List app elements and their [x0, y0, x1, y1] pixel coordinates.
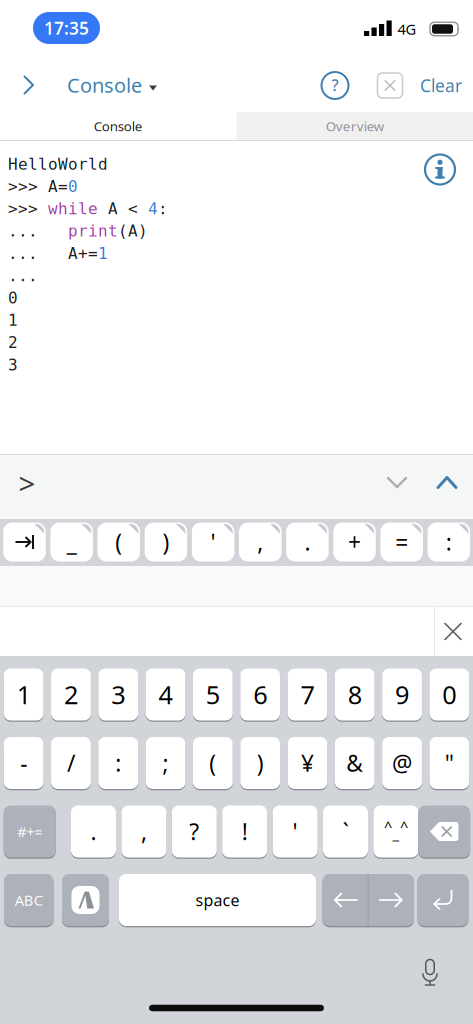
- button[interactable]: Dismiss: [377, 73, 402, 98]
- staticText: >: [18, 463, 35, 502]
- button[interactable]: 2: [51, 667, 91, 721]
- button[interactable]: 8: [335, 667, 375, 721]
- staticText: `: [342, 816, 348, 846]
- button[interactable]: :: [98, 736, 138, 790]
- button[interactable]: ): [240, 736, 280, 790]
- button[interactable]: .: [286, 522, 329, 561]
- staticText: _: [67, 527, 77, 557]
- staticText: :: [446, 527, 452, 557]
- button[interactable]: 1: [4, 667, 44, 721]
- button[interactable]: `: [323, 804, 368, 858]
- button[interactable]: ,: [121, 804, 166, 858]
- staticText: 0: [442, 678, 456, 711]
- button[interactable]: [417, 873, 468, 927]
- button[interactable]: Console: [0, 112, 236, 140]
- button[interactable]: 7: [287, 667, 327, 721]
- button[interactable]: Info: [425, 154, 455, 184]
- staticText: ": [445, 748, 454, 778]
- button[interactable]: ?: [172, 804, 217, 858]
- button[interactable]: [62, 873, 109, 927]
- staticText: ... A+=: [8, 244, 98, 262]
- button[interactable]: ABC: [4, 873, 53, 927]
- staticText: while: [48, 200, 98, 218]
- button[interactable]: 5: [193, 667, 233, 721]
- staticText: 0: [68, 177, 78, 196]
- button[interactable]: [322, 873, 414, 927]
- button[interactable]: Close suggestions: [445, 623, 461, 639]
- button[interactable]: !: [222, 804, 267, 858]
- staticText: ...: [8, 267, 38, 285]
- staticText: Console: [94, 117, 143, 135]
- staticText: 3: [111, 678, 125, 711]
- staticText: print: [68, 222, 118, 240]
- staticText: 4: [158, 678, 172, 711]
- button[interactable]: -: [4, 736, 44, 790]
- button[interactable]: History up: [438, 477, 456, 488]
- button[interactable]: 9: [382, 667, 422, 721]
- staticText: Overview: [326, 117, 384, 135]
- button[interactable]: ': [273, 804, 318, 858]
- button[interactable]: =: [380, 522, 423, 561]
- button[interactable]: History down: [388, 478, 406, 488]
- button[interactable]: (: [97, 522, 140, 561]
- staticText: (A): [118, 222, 148, 240]
- button[interactable]: ,: [239, 522, 281, 561]
- button[interactable]: Clear: [420, 74, 462, 97]
- button[interactable]: ': [192, 522, 234, 561]
- staticText: ^ ^: [384, 816, 408, 836]
- button[interactable]: +: [333, 522, 376, 561]
- button[interactable]: Overview: [236, 112, 473, 140]
- button[interactable]: 0: [429, 667, 469, 721]
- staticText: .: [90, 816, 96, 846]
- button[interactable]: Help: [321, 72, 348, 99]
- button[interactable]: ¥: [287, 736, 327, 790]
- staticText: !: [242, 816, 248, 846]
- button[interactable]: Return to Personal Hotspot: [33, 12, 100, 44]
- button[interactable]: .: [71, 804, 116, 858]
- staticText: :: [115, 748, 121, 778]
- staticText: 7: [300, 678, 314, 711]
- staticText: >>> A=: [8, 177, 68, 196]
- staticText: ?: [331, 74, 338, 96]
- button[interactable]: 6: [240, 667, 280, 721]
- staticText: :: [158, 200, 168, 218]
- button[interactable]: ): [145, 522, 187, 561]
- staticText: @: [392, 748, 412, 778]
- button[interactable]: /: [51, 736, 91, 790]
- button[interactable]: :: [428, 522, 470, 561]
- staticText: /: [67, 748, 75, 778]
- staticText: Clear: [420, 74, 462, 97]
- staticText: &: [346, 748, 363, 778]
- staticText: ABC: [15, 890, 43, 910]
- staticText: 1: [8, 311, 18, 329]
- button[interactable]: [418, 804, 470, 858]
- button[interactable]: Show sidebar: [21, 74, 36, 95]
- button[interactable]: (: [193, 736, 233, 790]
- staticText: -: [20, 748, 27, 778]
- button[interactable]: #+=: [4, 804, 56, 858]
- staticText: 6: [253, 678, 267, 711]
- staticText: space: [195, 889, 239, 911]
- button[interactable]: &: [335, 736, 375, 790]
- staticText: 2: [64, 678, 78, 711]
- staticText: ,: [141, 816, 147, 846]
- staticText: ¥: [301, 748, 314, 778]
- staticText: A <: [98, 200, 148, 218]
- button[interactable]: Tab: [3, 522, 46, 561]
- staticText: +: [348, 527, 361, 557]
- button[interactable]: Dictation: [419, 958, 441, 988]
- button[interactable]: space: [119, 873, 316, 927]
- button[interactable]: Console: [67, 72, 157, 98]
- button[interactable]: ": [429, 736, 469, 790]
- button[interactable]: ^ ^: [373, 804, 418, 858]
- staticText: 5: [206, 678, 220, 711]
- staticText: 2: [8, 333, 18, 352]
- staticText: ?: [189, 816, 199, 846]
- button[interactable]: ;: [146, 736, 185, 790]
- button[interactable]: 3: [98, 667, 138, 721]
- staticText: =: [395, 527, 408, 557]
- button[interactable]: _: [50, 522, 93, 561]
- button[interactable]: @: [382, 736, 422, 790]
- button[interactable]: 4: [146, 667, 185, 721]
- staticText: ': [293, 816, 298, 846]
